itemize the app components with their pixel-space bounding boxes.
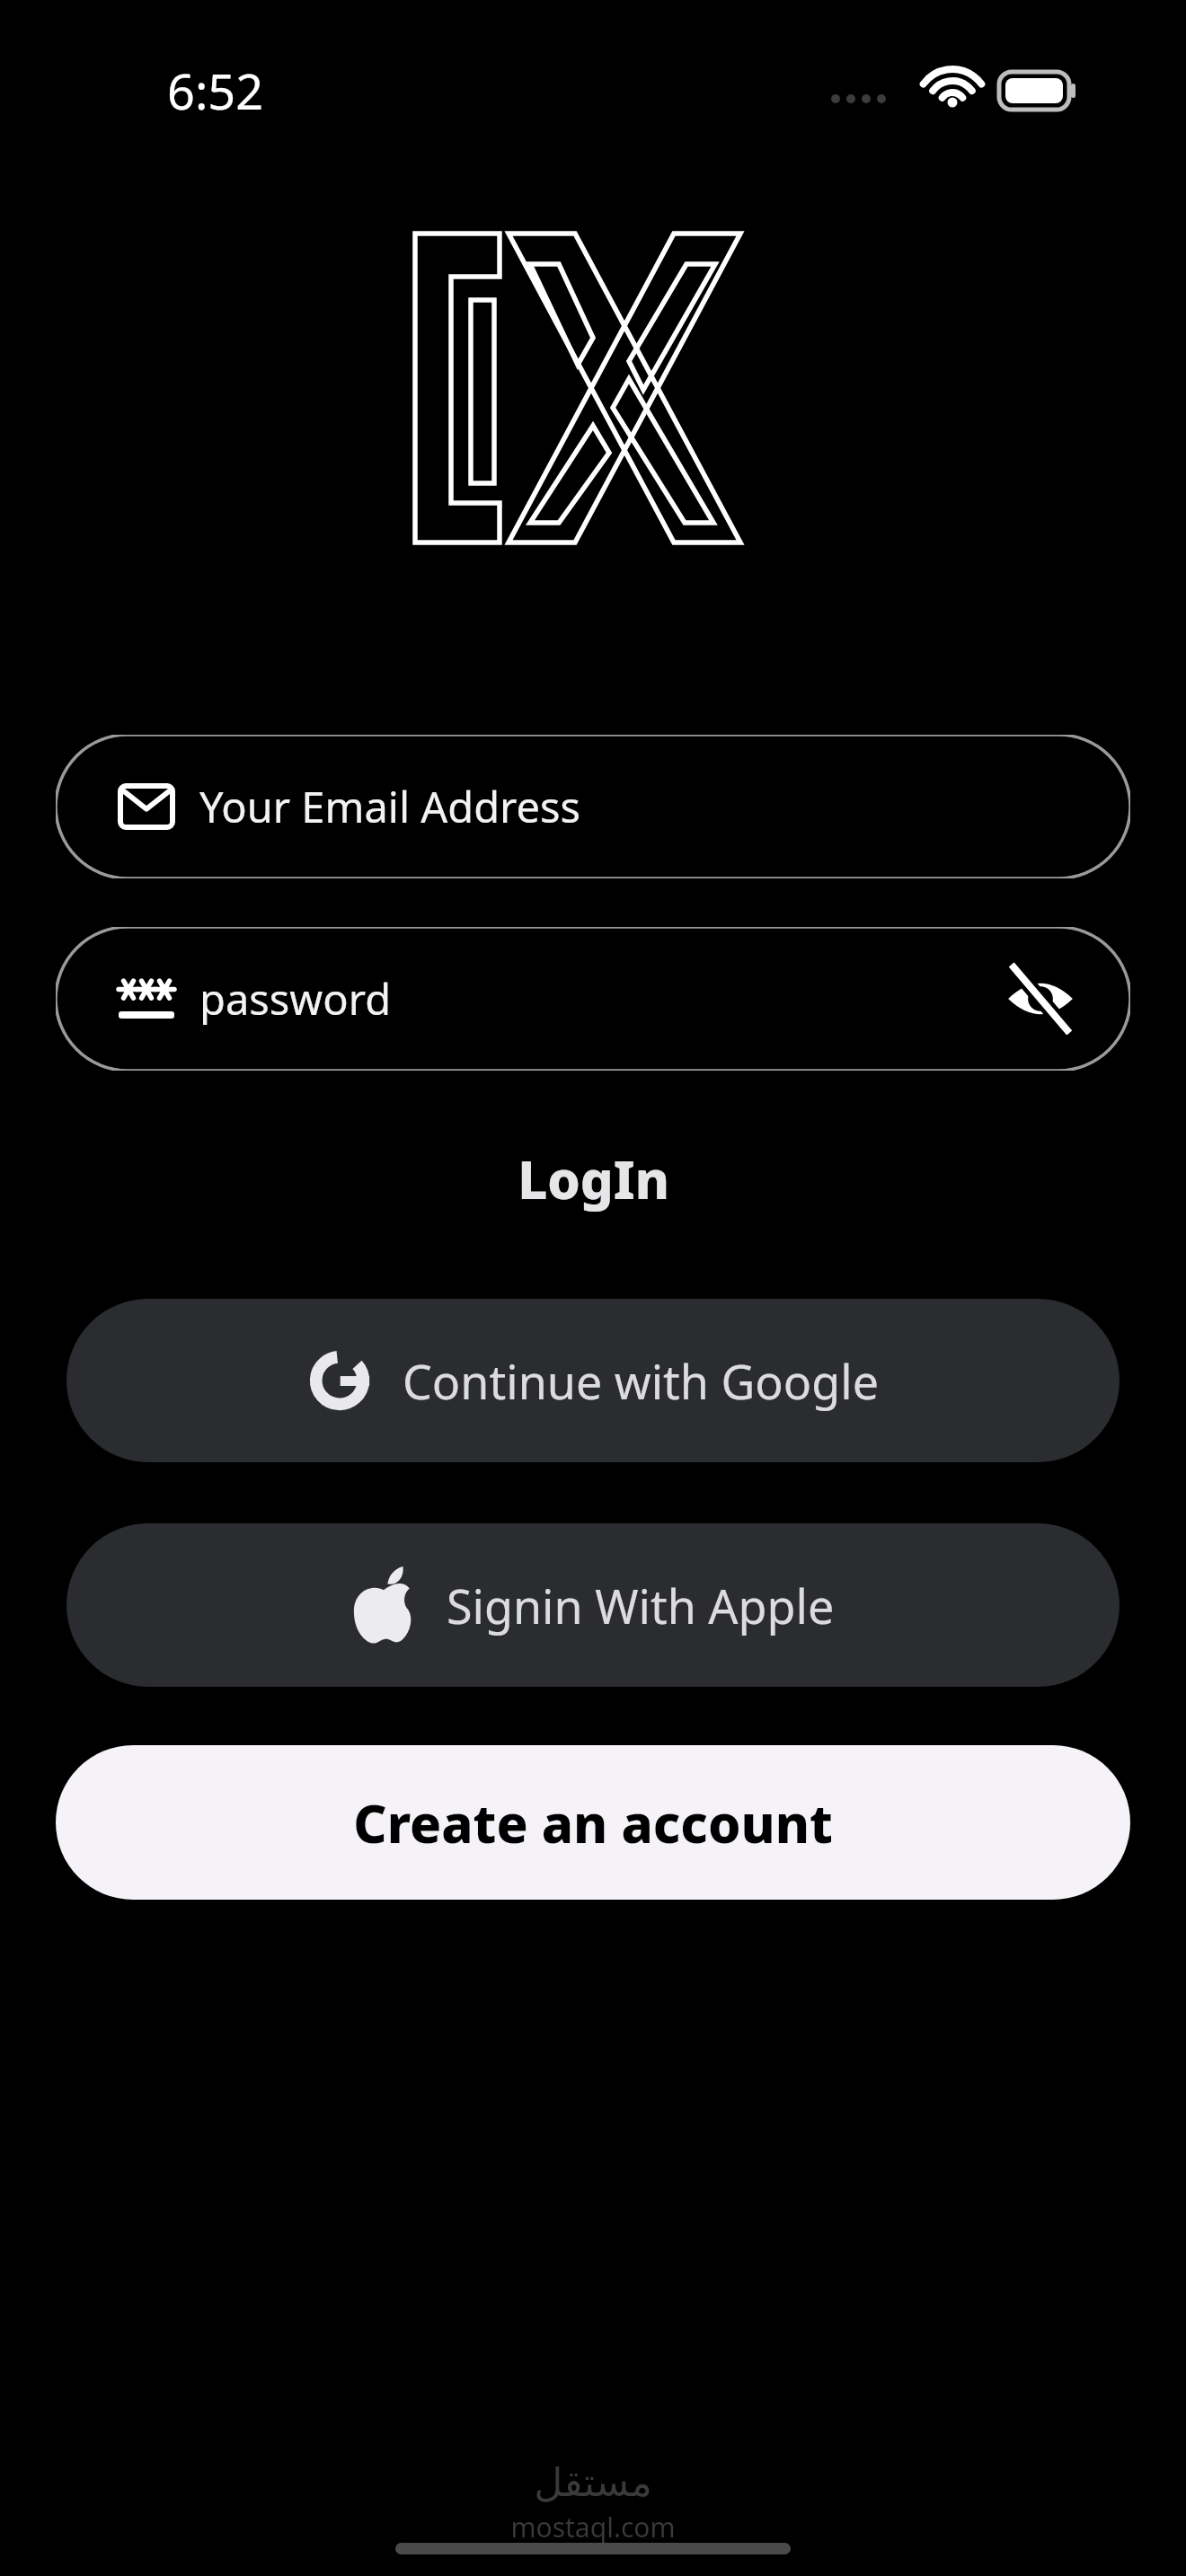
button[interactable]: Your Email Address (56, 735, 1130, 878)
button[interactable]: Show password (996, 954, 1085, 1044)
staticText: LogIn (518, 1143, 669, 1214)
staticText: Continue with Google (403, 1349, 879, 1413)
staticText: password (199, 970, 392, 1028)
button[interactable]: Create an account (56, 1745, 1130, 1900)
button[interactable]: LogIn (0, 1134, 1186, 1223)
button[interactable]: password (56, 927, 1130, 1071)
staticText: Signin With Apple (447, 1574, 835, 1637)
staticText: Create an account (353, 1787, 833, 1858)
staticText: mostaql.com (510, 2509, 676, 2545)
button[interactable]: Signin With Apple (66, 1523, 1120, 1687)
button[interactable]: Continue with Google (66, 1299, 1120, 1462)
staticText: Your Email Address (199, 778, 581, 835)
staticText: 6:52 (167, 57, 264, 124)
staticText: مستقل (534, 2459, 652, 2505)
